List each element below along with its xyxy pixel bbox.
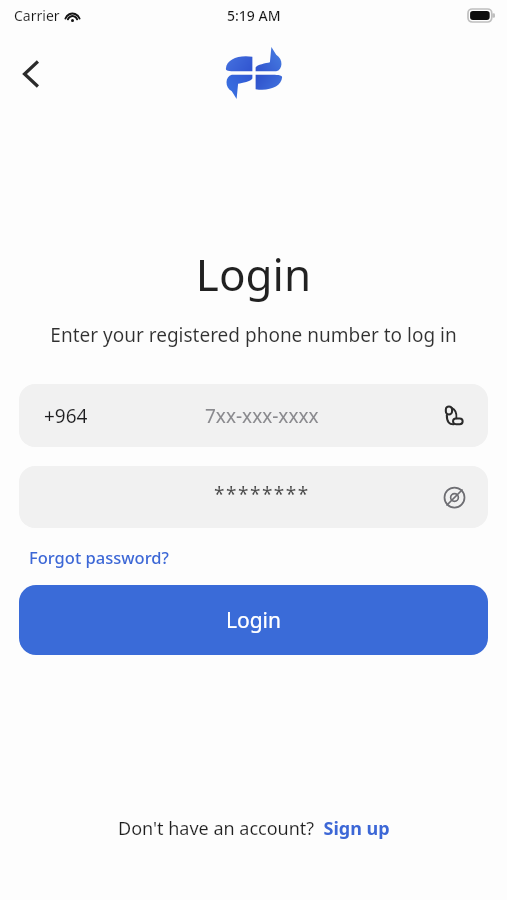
staticText: Don't have an account? Sign up [118, 816, 390, 841]
button[interactable]: Phone [434, 396, 474, 436]
staticText: Forgot password? [29, 546, 169, 568]
button[interactable]: +964 [19, 384, 488, 447]
button[interactable]: ******** [19, 466, 488, 528]
button[interactable]: Show password [434, 477, 474, 517]
staticText: 7xx-xxx-xxxx [205, 403, 319, 429]
button[interactable]: Don't have an account? Sign up [112, 812, 396, 845]
staticText: Login [0, 244, 507, 304]
button[interactable]: Login [19, 585, 488, 655]
staticText: Enter your registered phone number to lo… [20, 322, 487, 348]
staticText: Login [226, 606, 282, 635]
staticText: Carrier [14, 6, 60, 25]
staticText: ******** [214, 481, 310, 507]
button[interactable]: Forgot password? [19, 543, 179, 571]
button[interactable]: Back [8, 51, 54, 97]
staticText: +964 [44, 403, 88, 429]
staticText: 5:19 AM [227, 6, 281, 25]
